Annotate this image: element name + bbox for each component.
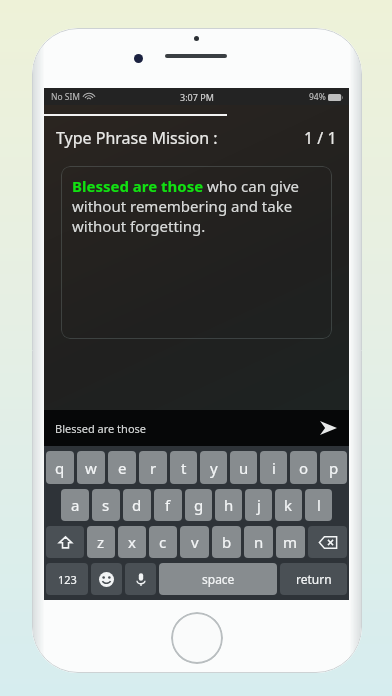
staticText: p <box>329 458 339 478</box>
button[interactable]: x <box>118 526 146 558</box>
button[interactable]: Send <box>315 415 341 441</box>
button[interactable]: t <box>170 451 197 484</box>
button[interactable]: f <box>154 489 182 521</box>
staticText: w <box>85 458 97 478</box>
staticText: o <box>299 458 309 478</box>
staticText: s <box>102 495 110 515</box>
button[interactable]: n <box>244 526 273 558</box>
staticText: t <box>181 458 187 478</box>
staticText: 123 <box>58 572 77 587</box>
button[interactable]: Blessed are those who can give without r… <box>61 166 332 339</box>
button[interactable]: q <box>46 451 74 484</box>
button[interactable]: b <box>212 526 241 558</box>
staticText: h <box>224 495 234 515</box>
button[interactable]: z <box>87 526 115 558</box>
staticText: i <box>272 458 276 478</box>
button[interactable]: u <box>230 451 257 484</box>
staticText: n <box>254 532 264 552</box>
button[interactable]: Home <box>171 612 223 664</box>
button[interactable]: h <box>215 489 242 521</box>
staticText: Type Phrase Mission : <box>56 127 218 149</box>
button[interactable]: space <box>159 563 277 595</box>
staticText: r <box>150 458 157 478</box>
staticText: 94% <box>309 91 326 103</box>
button[interactable]: l <box>305 489 332 521</box>
button[interactable]: k <box>275 489 302 521</box>
staticText: k <box>284 495 293 515</box>
staticText: z <box>97 532 105 552</box>
button[interactable]: o <box>290 451 317 484</box>
button[interactable]: s <box>92 489 120 521</box>
staticText: j <box>257 495 261 515</box>
staticText: a <box>71 495 80 515</box>
staticText: 1 / 1 <box>304 127 337 149</box>
staticText: return <box>296 571 332 587</box>
staticText: m <box>283 532 298 552</box>
button[interactable]: w <box>77 451 105 484</box>
button[interactable]: Backspace <box>308 526 347 558</box>
staticText: c <box>159 532 167 552</box>
staticText: u <box>239 458 249 478</box>
staticText: b <box>222 532 232 552</box>
button[interactable]: return <box>280 563 347 595</box>
button[interactable]: a <box>61 489 89 521</box>
button[interactable]: r <box>139 451 167 484</box>
button[interactable]: v <box>180 526 209 558</box>
staticText: y <box>210 458 218 478</box>
button[interactable]: g <box>185 489 212 521</box>
staticText: 3:07 PM <box>180 91 214 103</box>
staticText: No SIM <box>51 91 81 103</box>
staticText: e <box>118 458 127 478</box>
staticText: x <box>128 532 136 552</box>
button[interactable]: p <box>320 451 347 484</box>
staticText: v <box>191 532 199 552</box>
staticText: d <box>132 495 142 515</box>
staticText: space <box>202 571 235 587</box>
button[interactable]: d <box>123 489 151 521</box>
button[interactable]: j <box>245 489 272 521</box>
staticText: Blessed are those who can give without r… <box>72 176 322 236</box>
staticText: l <box>317 495 321 515</box>
button[interactable]: Emoji <box>91 563 122 595</box>
button[interactable]: Voice input <box>125 563 156 595</box>
staticText: g <box>194 495 204 515</box>
staticText: q <box>55 458 65 478</box>
button[interactable]: Shift <box>46 526 84 558</box>
button[interactable]: i <box>260 451 287 484</box>
button[interactable]: e <box>108 451 136 484</box>
button[interactable]: Blessed are those <box>44 410 349 446</box>
button[interactable]: 123 <box>46 563 88 595</box>
staticText: f <box>165 495 171 515</box>
button[interactable]: y <box>200 451 227 484</box>
button[interactable]: c <box>149 526 177 558</box>
staticText: Blessed are those <box>55 421 147 436</box>
button[interactable]: m <box>276 526 305 558</box>
